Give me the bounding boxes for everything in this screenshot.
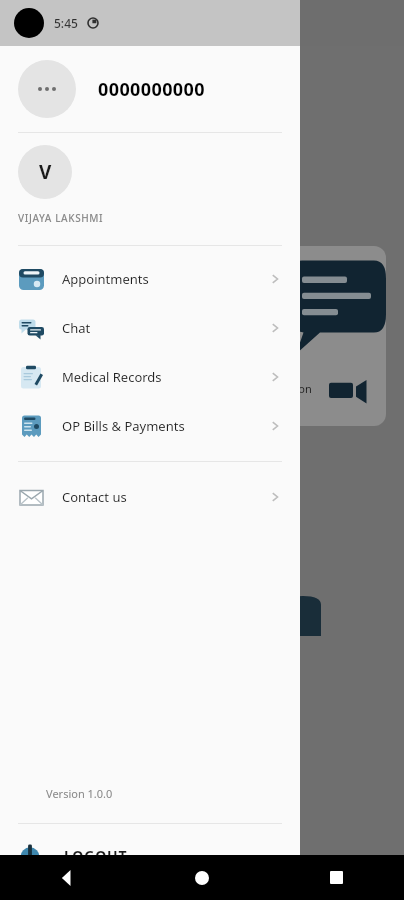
button[interactable]: Medical Records — [0, 352, 300, 401]
button[interactable]: OP Bills & Payments — [0, 401, 300, 450]
staticText: Appointments — [62, 270, 268, 288]
staticText: VIJAYA LAKSHMI — [18, 211, 104, 225]
staticText: 5:45 — [54, 15, 78, 31]
button[interactable]: Chat — [0, 303, 300, 352]
button[interactable]: LOGOUT — [0, 824, 300, 886]
staticText: 0000000000 — [98, 77, 205, 102]
button[interactable]: Back — [0, 855, 134, 900]
staticText: LOGOUT — [64, 846, 128, 865]
staticText: Consultation — [246, 381, 312, 396]
staticText: Chat — [62, 319, 268, 337]
staticText: V — [39, 159, 52, 185]
staticText: Contact us — [62, 488, 268, 506]
button[interactable]: V — [0, 133, 300, 235]
staticText: Medical Records — [62, 368, 268, 386]
button[interactable]: Recent apps — [269, 855, 404, 900]
button[interactable]: Contact us — [0, 472, 300, 521]
staticText: Version 1.0.0 — [46, 786, 113, 801]
button[interactable]: Home — [134, 855, 269, 900]
button[interactable]: Appointments — [0, 254, 300, 303]
staticText: OP Bills & Payments — [62, 417, 268, 435]
button[interactable]: 0000000000 — [0, 46, 300, 132]
